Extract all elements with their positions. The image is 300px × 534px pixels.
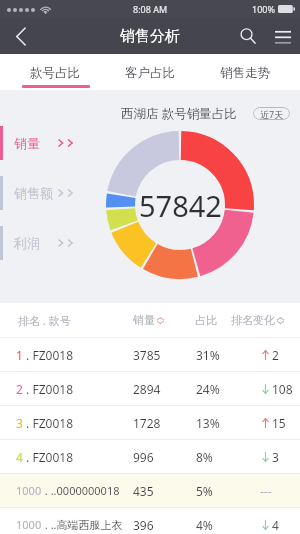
staticText: 57842 xyxy=(139,186,222,225)
staticText: 款号占比 xyxy=(30,65,80,81)
staticText: 996 xyxy=(133,449,154,465)
button[interactable]: 1000 xyxy=(0,508,300,534)
staticText: 1 xyxy=(16,347,23,363)
staticText: 销售走势 xyxy=(220,65,270,81)
button[interactable]: Back xyxy=(0,18,42,54)
staticText: 2894 xyxy=(133,381,161,397)
staticText: 2 xyxy=(16,381,23,397)
button[interactable]: 销售额 xyxy=(0,176,100,210)
staticText: 108 xyxy=(272,381,293,397)
button[interactable]: 2 xyxy=(0,372,300,405)
staticText: 3 xyxy=(272,449,279,465)
staticText: 占比 xyxy=(195,313,217,327)
staticText: 31% xyxy=(196,347,220,363)
button[interactable]: 3 xyxy=(0,406,300,439)
button[interactable]: 1 xyxy=(0,338,300,371)
staticText: 1728 xyxy=(133,415,161,431)
staticText: 销售额 xyxy=(14,185,53,201)
button[interactable]: 1000 xyxy=(0,474,300,507)
staticText: 近7天 xyxy=(260,108,284,120)
staticText: 4% xyxy=(196,517,213,533)
button[interactable]: 销量 xyxy=(0,126,100,160)
staticText: 100% xyxy=(252,3,275,15)
staticText: 销量 xyxy=(133,313,155,327)
staticText: 销量 xyxy=(14,135,40,151)
button[interactable]: 近7天 xyxy=(253,107,290,120)
staticText: 4 xyxy=(16,449,23,465)
staticText: . FZ0018 xyxy=(23,449,74,465)
button[interactable]: 利润 xyxy=(0,226,100,260)
staticText: 西湖店 款号销量占比 xyxy=(121,105,237,122)
staticText: 销售分析 xyxy=(120,27,180,46)
staticText: 5% xyxy=(196,483,213,499)
staticText: 1000 xyxy=(16,517,42,532)
staticText: 13% xyxy=(196,415,220,431)
staticText: . FZ0018 xyxy=(23,347,74,363)
button[interactable]: 销售走势 xyxy=(197,54,292,90)
button[interactable]: 客户占比 xyxy=(102,54,197,90)
staticText: 排名变化 xyxy=(231,313,275,327)
button[interactable]: 4 xyxy=(0,440,300,473)
staticText: 8% xyxy=(196,449,213,465)
staticText: . FZ0018 xyxy=(23,381,74,397)
staticText: . FZ0018 xyxy=(23,415,74,431)
staticText: 8:08 AM xyxy=(133,3,168,15)
staticText: 排名 . 款号 xyxy=(18,313,71,328)
button[interactable]: Search xyxy=(230,18,266,54)
staticText: 24% xyxy=(196,381,220,397)
staticText: 1000 xyxy=(16,483,42,498)
staticText: 3 xyxy=(16,415,23,431)
staticText: 利润 xyxy=(14,235,40,251)
staticText: 396 xyxy=(133,517,154,533)
staticText: 4 xyxy=(272,517,279,533)
staticText: 435 xyxy=(133,483,154,499)
staticText: . ..0000000018 xyxy=(42,483,120,498)
staticText: 3785 xyxy=(133,347,161,363)
staticText: 客户占比 xyxy=(125,65,175,81)
button[interactable]: Menu xyxy=(266,18,300,54)
button[interactable]: 款号占比 xyxy=(8,54,102,90)
staticText: 2 xyxy=(272,347,279,363)
staticText: 15 xyxy=(272,415,286,431)
staticText: --- xyxy=(260,483,272,499)
staticText: . ..高端西服上衣 xyxy=(42,517,123,532)
